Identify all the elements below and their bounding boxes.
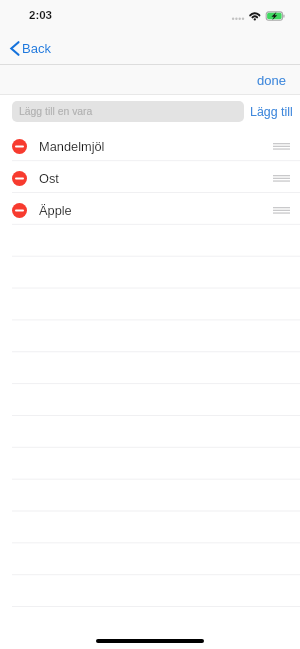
staticText: Back	[22, 41, 51, 56]
staticText: 2:03	[29, 9, 53, 22]
button[interactable]: Delete	[0, 193, 300, 225]
button[interactable]: Lägg till en vara	[12, 101, 244, 122]
staticText: Äpple	[39, 203, 72, 217]
button[interactable]: Delete	[0, 161, 300, 193]
button[interactable]: done	[243, 69, 300, 92]
staticText: Lägg till en vara	[19, 106, 93, 118]
button[interactable]: Lägg till	[244, 101, 297, 123]
other: Reorder	[273, 207, 290, 214]
staticText: Mandelmjöl	[39, 139, 105, 153]
staticText: Lägg till	[250, 105, 293, 119]
other: Delete	[12, 171, 27, 186]
other: Reorder	[273, 143, 290, 150]
other: Delete	[12, 139, 27, 154]
other: Delete	[12, 203, 27, 218]
staticText: Ost	[39, 171, 59, 185]
button[interactable]: Back	[0, 37, 61, 60]
other: Reorder	[273, 175, 290, 182]
button[interactable]: Delete	[0, 129, 300, 161]
